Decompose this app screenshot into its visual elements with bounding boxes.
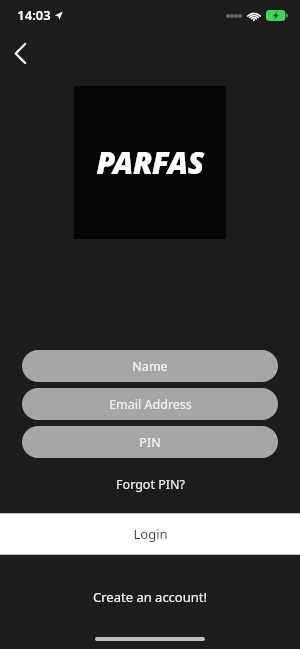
button[interactable]: PIN bbox=[22, 426, 278, 458]
staticText: Email Address bbox=[109, 396, 192, 413]
staticText: Name bbox=[132, 358, 168, 375]
button[interactable]: Back bbox=[0, 36, 40, 70]
staticText: PARFAS bbox=[96, 142, 204, 183]
button[interactable]: Forgot PIN? bbox=[108, 473, 193, 496]
staticText: Forgot PIN? bbox=[116, 476, 185, 493]
staticText: 14:03 bbox=[17, 6, 51, 24]
staticText: Create an account! bbox=[93, 588, 207, 606]
button[interactable]: Name bbox=[22, 350, 278, 382]
button[interactable]: Login bbox=[0, 513, 300, 555]
button[interactable]: Email Address bbox=[22, 388, 278, 420]
button[interactable]: Create an account! bbox=[83, 584, 217, 610]
staticText: Login bbox=[133, 525, 168, 543]
staticText: PIN bbox=[139, 434, 161, 451]
